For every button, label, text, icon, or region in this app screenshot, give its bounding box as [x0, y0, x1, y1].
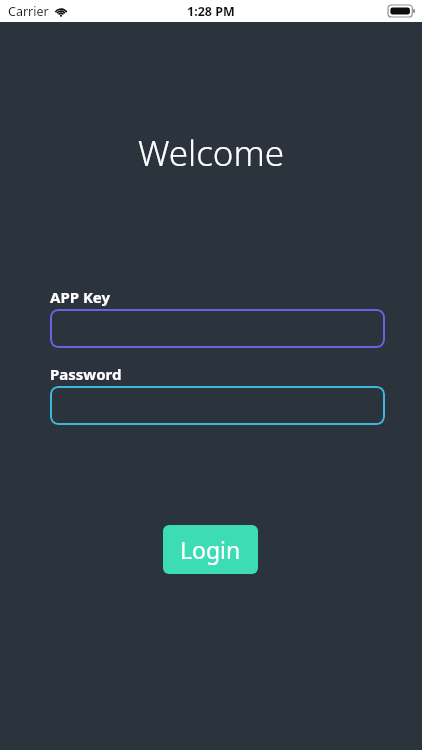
button[interactable]: Login	[163, 525, 258, 574]
staticText: 1:28 PM	[187, 3, 235, 20]
button[interactable]: APP Key input	[50, 309, 385, 348]
staticText: Password	[50, 364, 122, 384]
staticText: Login	[180, 534, 241, 565]
staticText: APP Key	[50, 287, 111, 307]
staticText: Welcome	[138, 129, 285, 177]
button[interactable]: Password input	[50, 386, 385, 425]
staticText: Carrier	[8, 3, 49, 20]
